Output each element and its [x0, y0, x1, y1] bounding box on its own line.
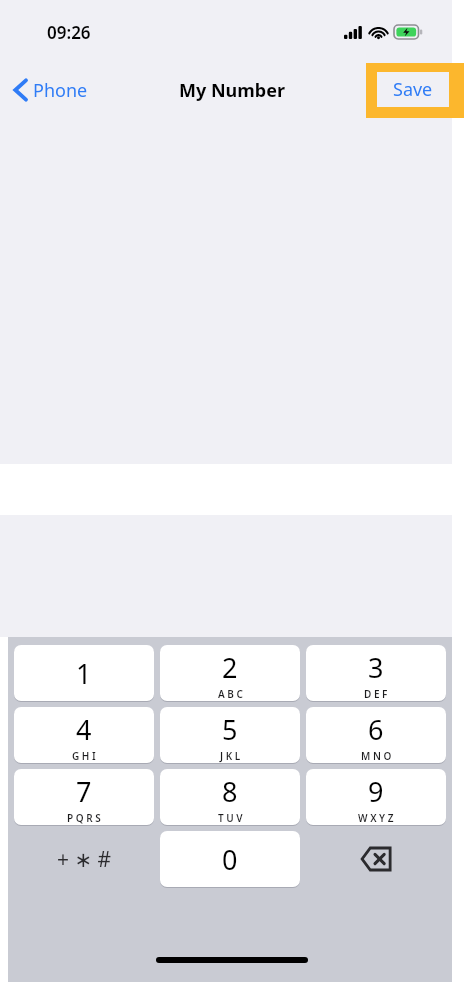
staticText: T U V — [218, 811, 243, 825]
button[interactable]: 5 — [160, 707, 300, 763]
button[interactable]: 1 — [14, 645, 154, 701]
staticText: G H I — [72, 749, 96, 763]
staticText: P Q R S — [67, 811, 101, 825]
staticText: W X Y Z — [358, 811, 394, 825]
staticText: 8 — [222, 773, 238, 810]
button[interactable]: 0 — [160, 831, 300, 887]
button[interactable]: 6 — [306, 707, 446, 763]
staticText: 3 — [368, 649, 384, 686]
staticText: 9 — [368, 773, 384, 810]
staticText: 6 — [368, 711, 384, 748]
staticText: M N O — [361, 749, 392, 763]
staticText: J K L — [220, 749, 241, 763]
staticText: My Number — [179, 78, 285, 103]
staticText: + ∗ # — [57, 845, 112, 874]
button[interactable]: Save — [366, 63, 464, 118]
staticText: A B C — [218, 687, 243, 701]
staticText: 09:26 — [47, 21, 91, 44]
staticText: 2 — [222, 649, 238, 686]
staticText: D E F — [364, 687, 388, 701]
staticText: 7 — [76, 773, 92, 810]
staticText: Save — [393, 77, 433, 102]
staticText: 0 — [222, 841, 238, 878]
staticText: 5 — [222, 711, 238, 748]
button[interactable]: Plus star hash — [14, 831, 154, 887]
staticText: 1 — [76, 655, 92, 692]
button[interactable]: 3 — [306, 645, 446, 701]
button[interactable]: 8 — [160, 769, 300, 825]
staticText: 4 — [76, 711, 92, 748]
button[interactable]: 2 — [160, 645, 300, 701]
button[interactable]: Phone — [0, 68, 100, 112]
button[interactable]: 7 — [14, 769, 154, 825]
staticText: Phone — [33, 78, 88, 103]
button[interactable]: Backspace — [306, 831, 446, 887]
button[interactable]: 4 — [14, 707, 154, 763]
button[interactable]: 9 — [306, 769, 446, 825]
